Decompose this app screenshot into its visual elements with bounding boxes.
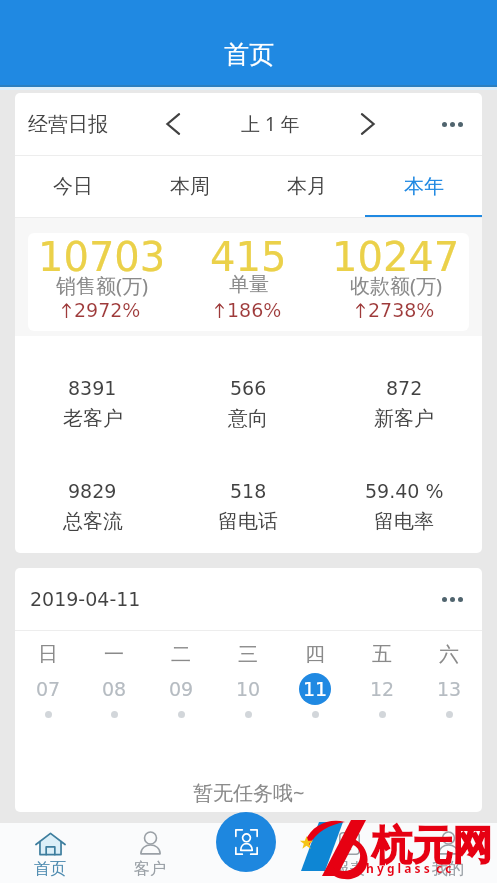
button[interactable]: Scan customer: [216, 812, 276, 872]
staticText: 日: [38, 642, 58, 667]
staticText: 上 1 年: [241, 111, 300, 137]
staticText: 13: [437, 678, 462, 700]
staticText: 12: [370, 678, 395, 700]
staticText: 我的: [432, 859, 464, 879]
staticText: 收款额(万): [350, 272, 442, 299]
button[interactable]: 报表: [299, 823, 398, 883]
staticText: 2972%: [74, 299, 141, 321]
staticText: 11: [303, 678, 328, 700]
staticText: 10: [236, 678, 261, 700]
staticText: 四: [305, 642, 325, 667]
staticText: 老客户: [63, 406, 123, 431]
staticText: 意向: [228, 406, 268, 431]
button[interactable]: 07: [15, 673, 81, 718]
staticText: 一: [104, 642, 124, 667]
staticText: 415: [210, 234, 287, 281]
staticText: 10247: [332, 234, 460, 281]
staticText: 三: [238, 642, 258, 667]
staticText: 留电率: [374, 509, 434, 534]
staticText: 07: [36, 678, 61, 700]
staticText: 08: [102, 678, 127, 700]
button[interactable]: 首页: [0, 823, 100, 883]
button[interactable]: 13: [415, 673, 482, 718]
staticText: 总客流: [63, 509, 123, 534]
staticText: 518: [230, 480, 267, 502]
staticText: 9829: [68, 480, 117, 502]
staticText: 留电话: [218, 509, 278, 534]
staticText: 单量: [229, 272, 269, 297]
staticText: 186%: [227, 299, 282, 321]
button[interactable]: 客户: [100, 823, 200, 883]
button[interactable]: 我的: [398, 823, 497, 883]
staticText: 59.40 %: [365, 480, 444, 502]
staticText: 本周: [170, 174, 210, 199]
staticText: 2019-04-11: [30, 588, 141, 610]
button[interactable]: 08: [81, 673, 147, 718]
staticText: 六: [439, 642, 459, 667]
staticText: 报表: [333, 859, 365, 879]
button[interactable]: 本年: [365, 156, 482, 217]
staticText: 客户: [134, 859, 166, 879]
button[interactable]: 本月: [248, 156, 365, 217]
button[interactable]: More options: [432, 579, 472, 619]
staticText: 872: [386, 377, 423, 399]
staticText: h y g l a s s c c: [366, 860, 452, 876]
staticText: 五: [372, 642, 392, 667]
staticText: 杭元网: [372, 820, 492, 870]
button[interactable]: Next period: [350, 106, 386, 142]
button[interactable]: 本周: [131, 156, 248, 217]
staticText: 销售额(万): [56, 272, 148, 299]
button[interactable]: More options: [432, 104, 472, 144]
staticText: 首页: [34, 859, 66, 879]
staticText: 经营日报: [28, 112, 108, 137]
staticText: 二: [171, 642, 191, 667]
button[interactable]: 今日: [15, 156, 131, 217]
button[interactable]: Previous period: [155, 106, 191, 142]
staticText: 本月: [287, 174, 327, 199]
staticText: 本年: [404, 174, 444, 199]
button[interactable]: 09: [147, 673, 214, 718]
button[interactable]: 10: [214, 673, 281, 718]
button[interactable]: 12: [348, 673, 415, 718]
staticText: 今日: [53, 174, 93, 199]
staticText: 566: [230, 377, 267, 399]
staticText: 10703: [38, 234, 166, 281]
staticText: 新客户: [374, 406, 434, 431]
staticText: 暂无任务哦~: [193, 779, 305, 806]
staticText: 8391: [68, 377, 117, 399]
staticText: 2738%: [368, 299, 435, 321]
button[interactable]: 11: [281, 673, 348, 718]
staticText: 首页: [224, 39, 274, 70]
staticText: 09: [169, 678, 194, 700]
